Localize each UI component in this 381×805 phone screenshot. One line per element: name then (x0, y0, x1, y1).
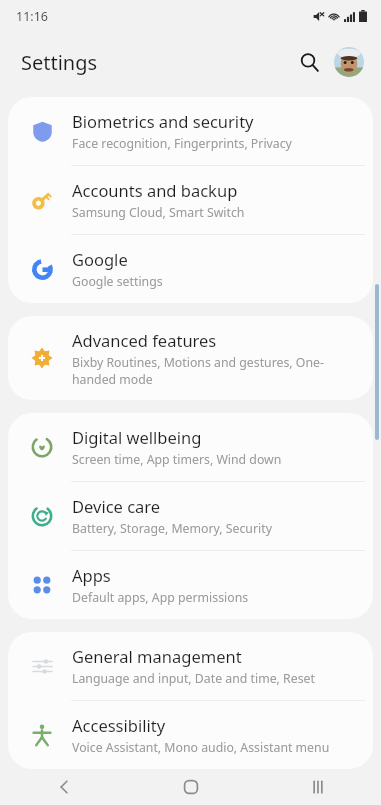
staticText: Google settings (72, 273, 163, 290)
button[interactable]: Profile (333, 46, 365, 78)
staticText: Default apps, App permissions (72, 589, 249, 606)
staticText: General management (72, 645, 242, 667)
staticText: Biometrics and security (72, 110, 254, 132)
button[interactable]: Search (290, 43, 328, 81)
button[interactable]: Digital wellbeing (8, 413, 373, 481)
staticText: Bixby Routines, Motions and gestures, On… (72, 354, 357, 387)
button[interactable]: Accessibility (8, 701, 373, 769)
staticText: Face recognition, Fingerprints, Privacy (72, 135, 292, 152)
button[interactable]: Device care (8, 482, 373, 550)
staticText: Accessibility (72, 714, 166, 736)
staticText: Accounts and backup (72, 179, 238, 201)
button[interactable]: Apps (8, 551, 373, 619)
staticText: Google (72, 248, 128, 270)
staticText: Digital wellbeing (72, 426, 202, 448)
button[interactable]: General management (8, 632, 373, 700)
staticText: Voice Assistant, Mono audio, Assistant m… (72, 739, 330, 756)
staticText: Language and input, Date and time, Reset (72, 670, 315, 687)
staticText: Apps (72, 564, 111, 586)
staticText: Samsung Cloud, Smart Switch (72, 204, 245, 221)
button[interactable]: Advanced features (8, 316, 373, 400)
button[interactable]: Google (8, 235, 373, 303)
button[interactable]: Recent apps (254, 769, 381, 805)
button[interactable]: Home (127, 769, 254, 805)
button[interactable]: Back (0, 769, 127, 805)
staticText: Battery, Storage, Memory, Security (72, 520, 272, 537)
staticText: 11:16 (16, 8, 48, 25)
staticText: Advanced features (72, 329, 217, 351)
staticText: Screen time, App timers, Wind down (72, 451, 282, 468)
staticText: Device care (72, 495, 161, 517)
staticText: Settings (21, 49, 98, 76)
button[interactable]: Accounts and backup (8, 166, 373, 234)
button[interactable]: Biometrics and security (8, 97, 373, 165)
